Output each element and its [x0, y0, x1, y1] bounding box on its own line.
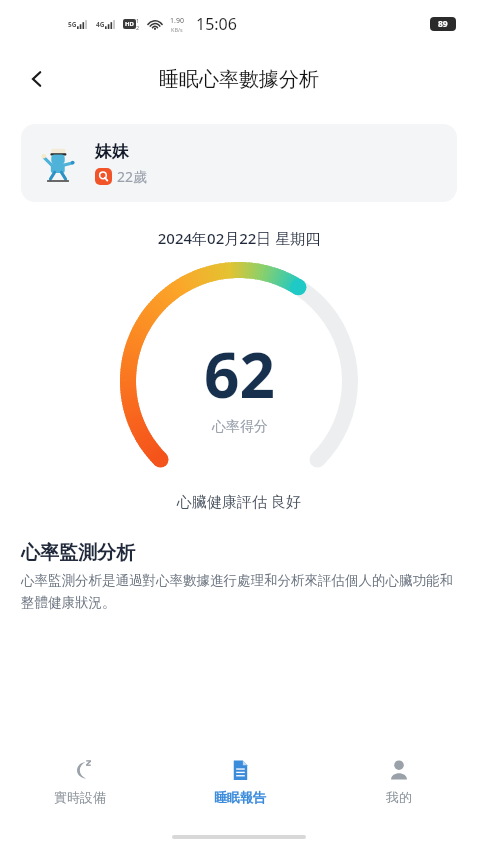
staticText: 22歲 — [117, 167, 148, 186]
staticText: 5G — [68, 20, 77, 29]
staticText: KB/s — [171, 26, 183, 33]
staticText: 2024年02月22日 星期四 — [0, 228, 478, 248]
button[interactable]: Back — [14, 56, 60, 102]
staticText: 實時設備 — [54, 789, 106, 805]
staticText: 89 — [438, 18, 448, 30]
staticText: 我的 — [386, 789, 412, 805]
button[interactable]: 妹妹 — [21, 124, 457, 202]
staticText: 62 — [204, 332, 275, 416]
staticText: 睡眠報告 — [214, 789, 266, 805]
staticText: 心臟健康評估 良好 — [0, 491, 478, 511]
staticText: 睡眠心率數據分析 — [159, 67, 319, 92]
staticText: 2 — [136, 24, 140, 31]
staticText: 15:06 — [196, 13, 237, 35]
staticText: 心率監測分析 — [21, 541, 135, 565]
staticText: 1.90 — [170, 16, 184, 26]
staticText: 心率監測分析是通過對心率數據進行處理和分析來評估個人的心臟功能和整體健康狀況。 — [21, 572, 457, 611]
staticText: 1 — [136, 17, 140, 24]
staticText: 心率得分 — [212, 418, 268, 436]
button[interactable]: 實時設備 — [0, 746, 160, 824]
button[interactable]: 睡眠報告 — [160, 746, 319, 824]
button[interactable]: 我的 — [319, 746, 478, 824]
staticText: 4G — [96, 20, 105, 29]
staticText: HD — [125, 20, 134, 28]
staticText: 妹妹 — [95, 141, 129, 162]
